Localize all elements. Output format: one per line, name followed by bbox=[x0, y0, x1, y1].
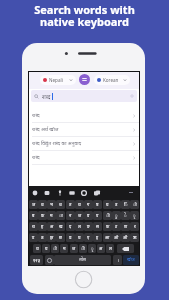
button[interactable]: य bbox=[42, 244, 50, 253]
button[interactable]: ष bbox=[93, 200, 102, 209]
button[interactable]: ृ bbox=[88, 244, 96, 253]
button[interactable]: थ bbox=[75, 200, 84, 209]
button[interactable]: ठ bbox=[38, 233, 47, 242]
button[interactable]: ु bbox=[112, 211, 121, 220]
button[interactable]: व bbox=[84, 211, 93, 220]
button[interactable]: शब्द विद्युत शब्द का अनुवाद bbox=[29, 137, 139, 150]
button[interactable]: ट bbox=[112, 222, 121, 231]
staticText: ब bbox=[32, 213, 35, 219]
staticText: श bbox=[32, 224, 35, 230]
button[interactable]: अ bbox=[47, 222, 56, 231]
button[interactable]: ल bbox=[75, 222, 84, 231]
button[interactable]: Emoji bbox=[29, 186, 41, 199]
button[interactable]: ा bbox=[56, 211, 65, 220]
staticText: ओ bbox=[114, 235, 119, 241]
staticText: ु bbox=[115, 213, 118, 219]
button[interactable]: Next keyboard bbox=[45, 255, 54, 265]
button[interactable]: अ bbox=[97, 244, 105, 253]
button[interactable]: ी bbox=[79, 244, 87, 253]
button[interactable]: द bbox=[66, 222, 75, 231]
button[interactable]: े bbox=[121, 211, 130, 220]
staticText: Nepali bbox=[49, 77, 63, 83]
staticText: शब्द विद्युत शब्द का अनुवाद bbox=[32, 140, 82, 147]
button[interactable]: छ bbox=[56, 233, 65, 242]
button[interactable]: ी bbox=[103, 211, 112, 220]
button[interactable]: ध bbox=[38, 200, 47, 209]
button[interactable]: Collapse keyboard bbox=[125, 186, 136, 199]
button[interactable]: ख bbox=[56, 222, 65, 231]
button[interactable]: च bbox=[56, 200, 65, 209]
button[interactable]: खोज bbox=[123, 255, 139, 265]
button[interactable]: प bbox=[93, 211, 102, 220]
staticText: घ bbox=[78, 235, 81, 241]
button[interactable]: ण bbox=[121, 222, 130, 231]
button[interactable]: घ bbox=[75, 233, 84, 242]
button[interactable]: स bbox=[93, 222, 102, 231]
button[interactable]: त bbox=[66, 200, 75, 209]
button[interactable]: ड bbox=[29, 233, 38, 242]
button[interactable]: शब्द अर्थ खोज bbox=[29, 123, 139, 136]
button[interactable]: भ bbox=[47, 200, 56, 209]
button[interactable]: १२३ bbox=[30, 255, 43, 265]
button[interactable]: इ bbox=[93, 233, 102, 242]
button[interactable]: ओ bbox=[112, 233, 121, 242]
button[interactable]: आ bbox=[103, 233, 112, 242]
button[interactable]: औ bbox=[121, 233, 130, 242]
staticText: ड bbox=[32, 235, 35, 241]
button[interactable]: शब्द bbox=[29, 109, 139, 122]
button[interactable]: ो bbox=[51, 244, 59, 253]
staticText: ढ bbox=[69, 235, 72, 241]
button[interactable]: उ bbox=[112, 200, 121, 209]
button[interactable]: म bbox=[47, 211, 56, 220]
button[interactable]: Nepali bbox=[40, 75, 76, 85]
button[interactable]: ए bbox=[84, 233, 93, 242]
button[interactable]: ऋ bbox=[130, 233, 139, 242]
button[interactable]: ङ bbox=[84, 222, 93, 231]
button[interactable]: ज bbox=[75, 211, 84, 220]
button[interactable]: ि bbox=[121, 200, 130, 209]
button[interactable]: ढ bbox=[66, 233, 75, 242]
button[interactable]: थ bbox=[33, 244, 41, 253]
button[interactable]: ब bbox=[29, 211, 38, 220]
button[interactable]: Themes bbox=[91, 186, 103, 199]
button[interactable]: फ bbox=[103, 222, 112, 231]
staticText: शब्द bbox=[42, 93, 51, 100]
button[interactable]: Settings bbox=[78, 186, 90, 199]
button[interactable]: स्पेस bbox=[54, 255, 111, 265]
button[interactable]: Stickers bbox=[41, 186, 53, 199]
staticText: स bbox=[96, 224, 99, 230]
button[interactable]: Period bbox=[113, 255, 122, 265]
button[interactable]: र bbox=[130, 222, 139, 231]
staticText: न bbox=[69, 213, 72, 219]
button[interactable]: ह bbox=[38, 222, 47, 231]
button[interactable]: शब्द bbox=[31, 90, 137, 102]
button[interactable]: ृ bbox=[130, 211, 139, 220]
staticText: च bbox=[59, 202, 62, 208]
button[interactable]: Backspace bbox=[117, 244, 134, 253]
staticText: इ bbox=[96, 235, 99, 241]
staticText: छ bbox=[59, 235, 62, 241]
button[interactable]: Clipboard bbox=[66, 186, 78, 199]
staticText: उ bbox=[115, 202, 118, 208]
button[interactable]: म bbox=[60, 244, 68, 253]
button[interactable]: ज bbox=[70, 244, 78, 253]
button[interactable]: शब्द bbox=[29, 151, 139, 164]
button[interactable]: Voice input bbox=[54, 186, 66, 199]
button[interactable]: न bbox=[66, 211, 75, 220]
button[interactable]: ग bbox=[84, 200, 93, 209]
button[interactable]: ञ bbox=[29, 200, 38, 209]
staticText: द bbox=[69, 224, 72, 230]
staticText: प bbox=[96, 213, 99, 219]
button[interactable]: Swap languages bbox=[79, 74, 90, 85]
button[interactable]: श bbox=[29, 222, 38, 231]
staticText: ङ bbox=[87, 224, 90, 230]
button[interactable]: क bbox=[38, 211, 47, 220]
button[interactable]: ो bbox=[130, 200, 139, 209]
staticText: स्पेस bbox=[79, 257, 86, 263]
button[interactable]: य bbox=[103, 200, 112, 209]
button[interactable]: Korean bbox=[94, 75, 130, 85]
button[interactable]: ल bbox=[106, 244, 114, 253]
staticText: र bbox=[134, 224, 136, 230]
button[interactable]: झ bbox=[47, 233, 56, 242]
staticText: ज bbox=[78, 213, 82, 219]
